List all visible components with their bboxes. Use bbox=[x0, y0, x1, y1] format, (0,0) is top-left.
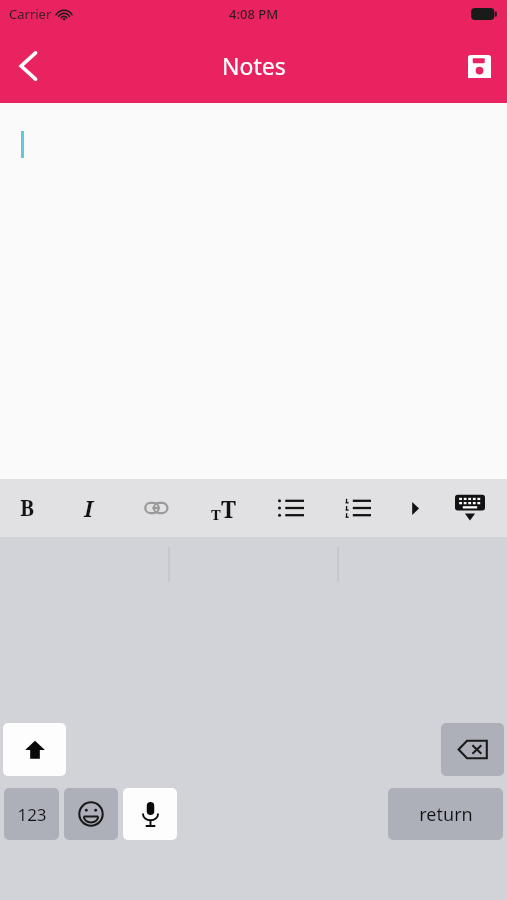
button[interactable]: Link bbox=[122, 479, 190, 537]
staticText: 4:08 PM bbox=[229, 5, 279, 23]
staticText: T bbox=[211, 504, 221, 524]
button[interactable]: Hide keyboard bbox=[439, 479, 501, 537]
staticText: Carrier bbox=[9, 5, 52, 23]
button[interactable]: Bulleted list bbox=[257, 479, 324, 537]
staticText: T bbox=[221, 493, 237, 524]
button[interactable]: 123 bbox=[4, 788, 59, 840]
button[interactable]: Emoji bbox=[64, 788, 118, 840]
button[interactable]: More bbox=[391, 479, 439, 537]
staticText: I bbox=[84, 493, 93, 523]
button[interactable] bbox=[0, 103, 507, 479]
button[interactable]: Bold bbox=[0, 479, 55, 537]
button[interactable]: Dictation bbox=[123, 788, 177, 840]
button[interactable]: Shift bbox=[3, 723, 66, 776]
staticText: Notes bbox=[222, 50, 286, 81]
button[interactable]: Back bbox=[0, 38, 56, 94]
button[interactable]: Text size bbox=[190, 479, 257, 537]
button[interactable]: Backspace bbox=[441, 723, 504, 776]
staticText: B bbox=[20, 494, 35, 523]
button[interactable]: return bbox=[388, 788, 503, 840]
button[interactable]: Italic bbox=[55, 479, 122, 537]
staticText: return bbox=[419, 802, 473, 827]
staticText: 123 bbox=[17, 803, 47, 826]
button[interactable]: Save bbox=[451, 38, 507, 94]
button[interactable]: Numbered list bbox=[324, 479, 391, 537]
